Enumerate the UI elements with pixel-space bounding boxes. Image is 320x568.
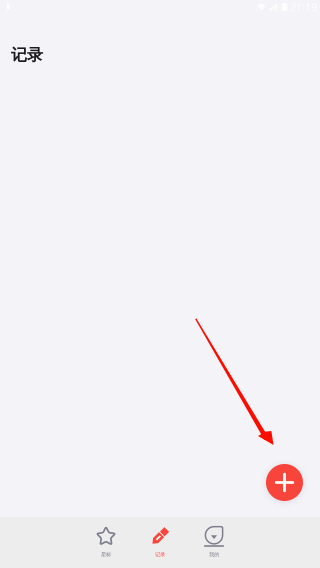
button[interactable]: 星标 [79,518,133,567]
staticText: 记录 [11,45,43,65]
button[interactable]: Add record [266,464,303,501]
staticText: 我的 [209,551,219,558]
button[interactable]: 我的 [187,518,241,567]
button[interactable]: 记录 [133,518,187,567]
staticText: 星标 [101,551,111,558]
staticText: 记录 [155,551,165,558]
